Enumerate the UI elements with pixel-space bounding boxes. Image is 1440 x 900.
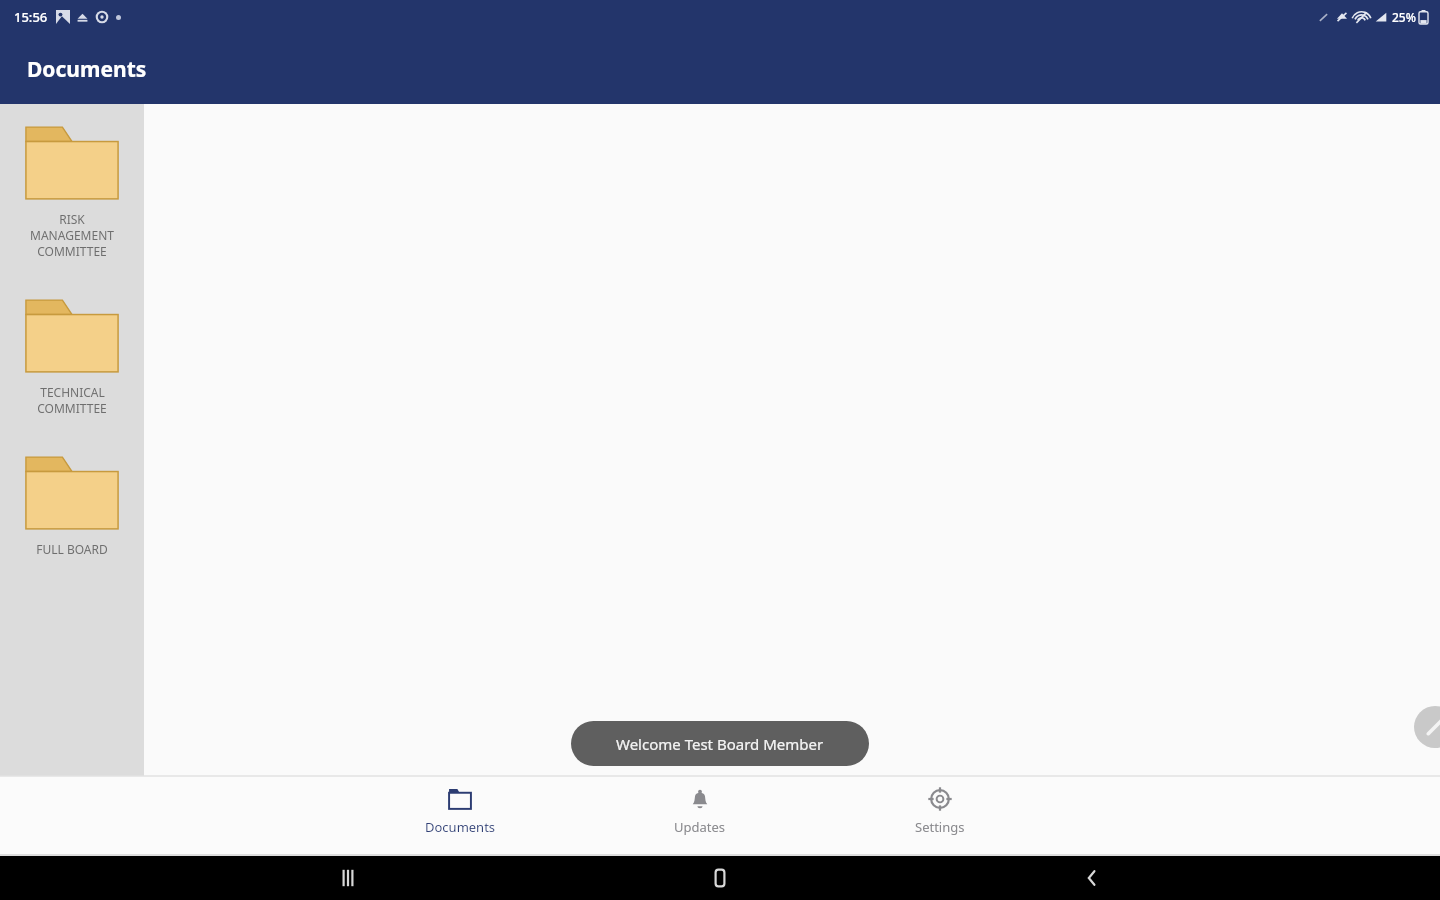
button[interactable]: TECHNICAL	[0, 297, 144, 416]
staticText: COMMITTEE	[37, 400, 107, 416]
button[interactable]: Edit	[1414, 706, 1440, 748]
staticText: Documents	[425, 818, 496, 836]
staticText: Documents	[27, 55, 147, 84]
button[interactable]: Documents	[400, 776, 520, 836]
staticText: FULL BOARD	[36, 541, 108, 557]
button[interactable]: Back	[1068, 856, 1116, 900]
staticText: 25%	[1392, 9, 1416, 25]
staticText: COMMITTEE	[37, 243, 107, 259]
staticText: Settings	[915, 818, 965, 836]
staticText: MANAGEMENT	[30, 227, 114, 243]
button[interactable]: Home	[696, 856, 744, 900]
button[interactable]: Settings	[880, 776, 1000, 836]
staticText: 15:56	[14, 8, 48, 26]
button[interactable]: Recents	[324, 856, 372, 900]
button[interactable]: Welcome Test Board Member	[571, 721, 869, 766]
staticText: RISK	[59, 211, 85, 227]
staticText: Updates	[674, 818, 726, 836]
button[interactable]: RISK	[0, 124, 144, 259]
staticText: TECHNICAL	[40, 384, 105, 400]
staticText: Welcome Test Board Member	[616, 734, 824, 754]
button[interactable]: FULL BOARD	[0, 454, 144, 557]
button[interactable]: Updates	[640, 776, 760, 836]
